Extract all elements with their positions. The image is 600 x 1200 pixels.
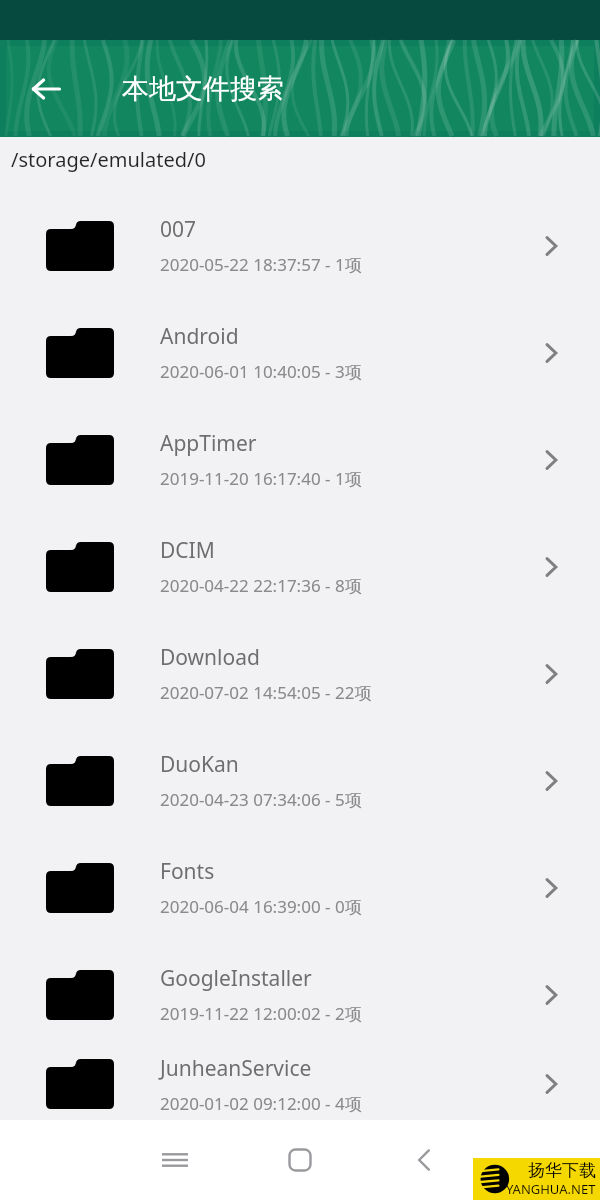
staticText: YANGHUA.NET <box>506 1180 596 1198</box>
button[interactable]: Home <box>276 1136 324 1184</box>
button[interactable]: DuoKan <box>0 727 600 834</box>
staticText: 007 <box>160 215 197 244</box>
staticText: Android <box>160 322 239 351</box>
staticText: 2020-05-22 18:37:57 - 1项 <box>160 253 362 276</box>
button[interactable]: GoogleInstaller <box>0 941 600 1048</box>
staticText: GoogleInstaller <box>160 964 312 993</box>
button[interactable]: 007 <box>0 192 600 299</box>
button[interactable]: AppTimer <box>0 406 600 513</box>
button[interactable]: DCIM <box>0 513 600 620</box>
button[interactable]: Fonts <box>0 834 600 941</box>
button[interactable]: Open Fonts <box>531 868 571 908</box>
staticText: JunheanService <box>160 1054 312 1083</box>
staticText: Fonts <box>160 857 215 886</box>
button[interactable]: Back <box>22 65 70 113</box>
staticText: 2020-04-23 07:34:06 - 5项 <box>160 788 362 811</box>
staticText: 2020-01-02 09:12:00 - 4项 <box>160 1092 362 1115</box>
button[interactable]: Open 007 <box>531 226 571 266</box>
staticText: 2020-07-02 14:54:05 - 22项 <box>160 681 372 704</box>
button[interactable]: Open Download <box>531 654 571 694</box>
staticText: AppTimer <box>160 429 257 458</box>
button[interactable]: Back <box>401 1136 449 1184</box>
button[interactable]: Open DCIM <box>531 547 571 587</box>
staticText: 扬华下载 <box>528 1160 596 1181</box>
staticText: 2020-04-22 22:17:36 - 8项 <box>160 574 362 597</box>
staticText: 本地文件搜索 <box>122 72 284 106</box>
button[interactable]: Open AppTimer <box>531 440 571 480</box>
button[interactable]: Open JunheanService <box>531 1064 571 1104</box>
staticText: 2020-06-01 10:40:05 - 3项 <box>160 360 362 383</box>
staticText: Download <box>160 643 260 672</box>
button[interactable]: JunheanService <box>0 1048 600 1120</box>
button[interactable]: Open DuoKan <box>531 761 571 801</box>
button[interactable]: Download <box>0 620 600 727</box>
staticText: /storage/emulated/0 <box>11 146 206 173</box>
button[interactable]: Android <box>0 299 600 406</box>
staticText: 2019-11-22 12:00:02 - 2项 <box>160 1002 362 1025</box>
button[interactable]: Open GoogleInstaller <box>531 975 571 1015</box>
staticText: 2020-06-04 16:39:00 - 0项 <box>160 895 362 918</box>
button[interactable]: Recents <box>151 1136 199 1184</box>
staticText: DuoKan <box>160 750 239 779</box>
staticText: DCIM <box>160 536 215 565</box>
staticText: 2019-11-20 16:17:40 - 1项 <box>160 467 362 490</box>
button[interactable]: Open Android <box>531 333 571 373</box>
